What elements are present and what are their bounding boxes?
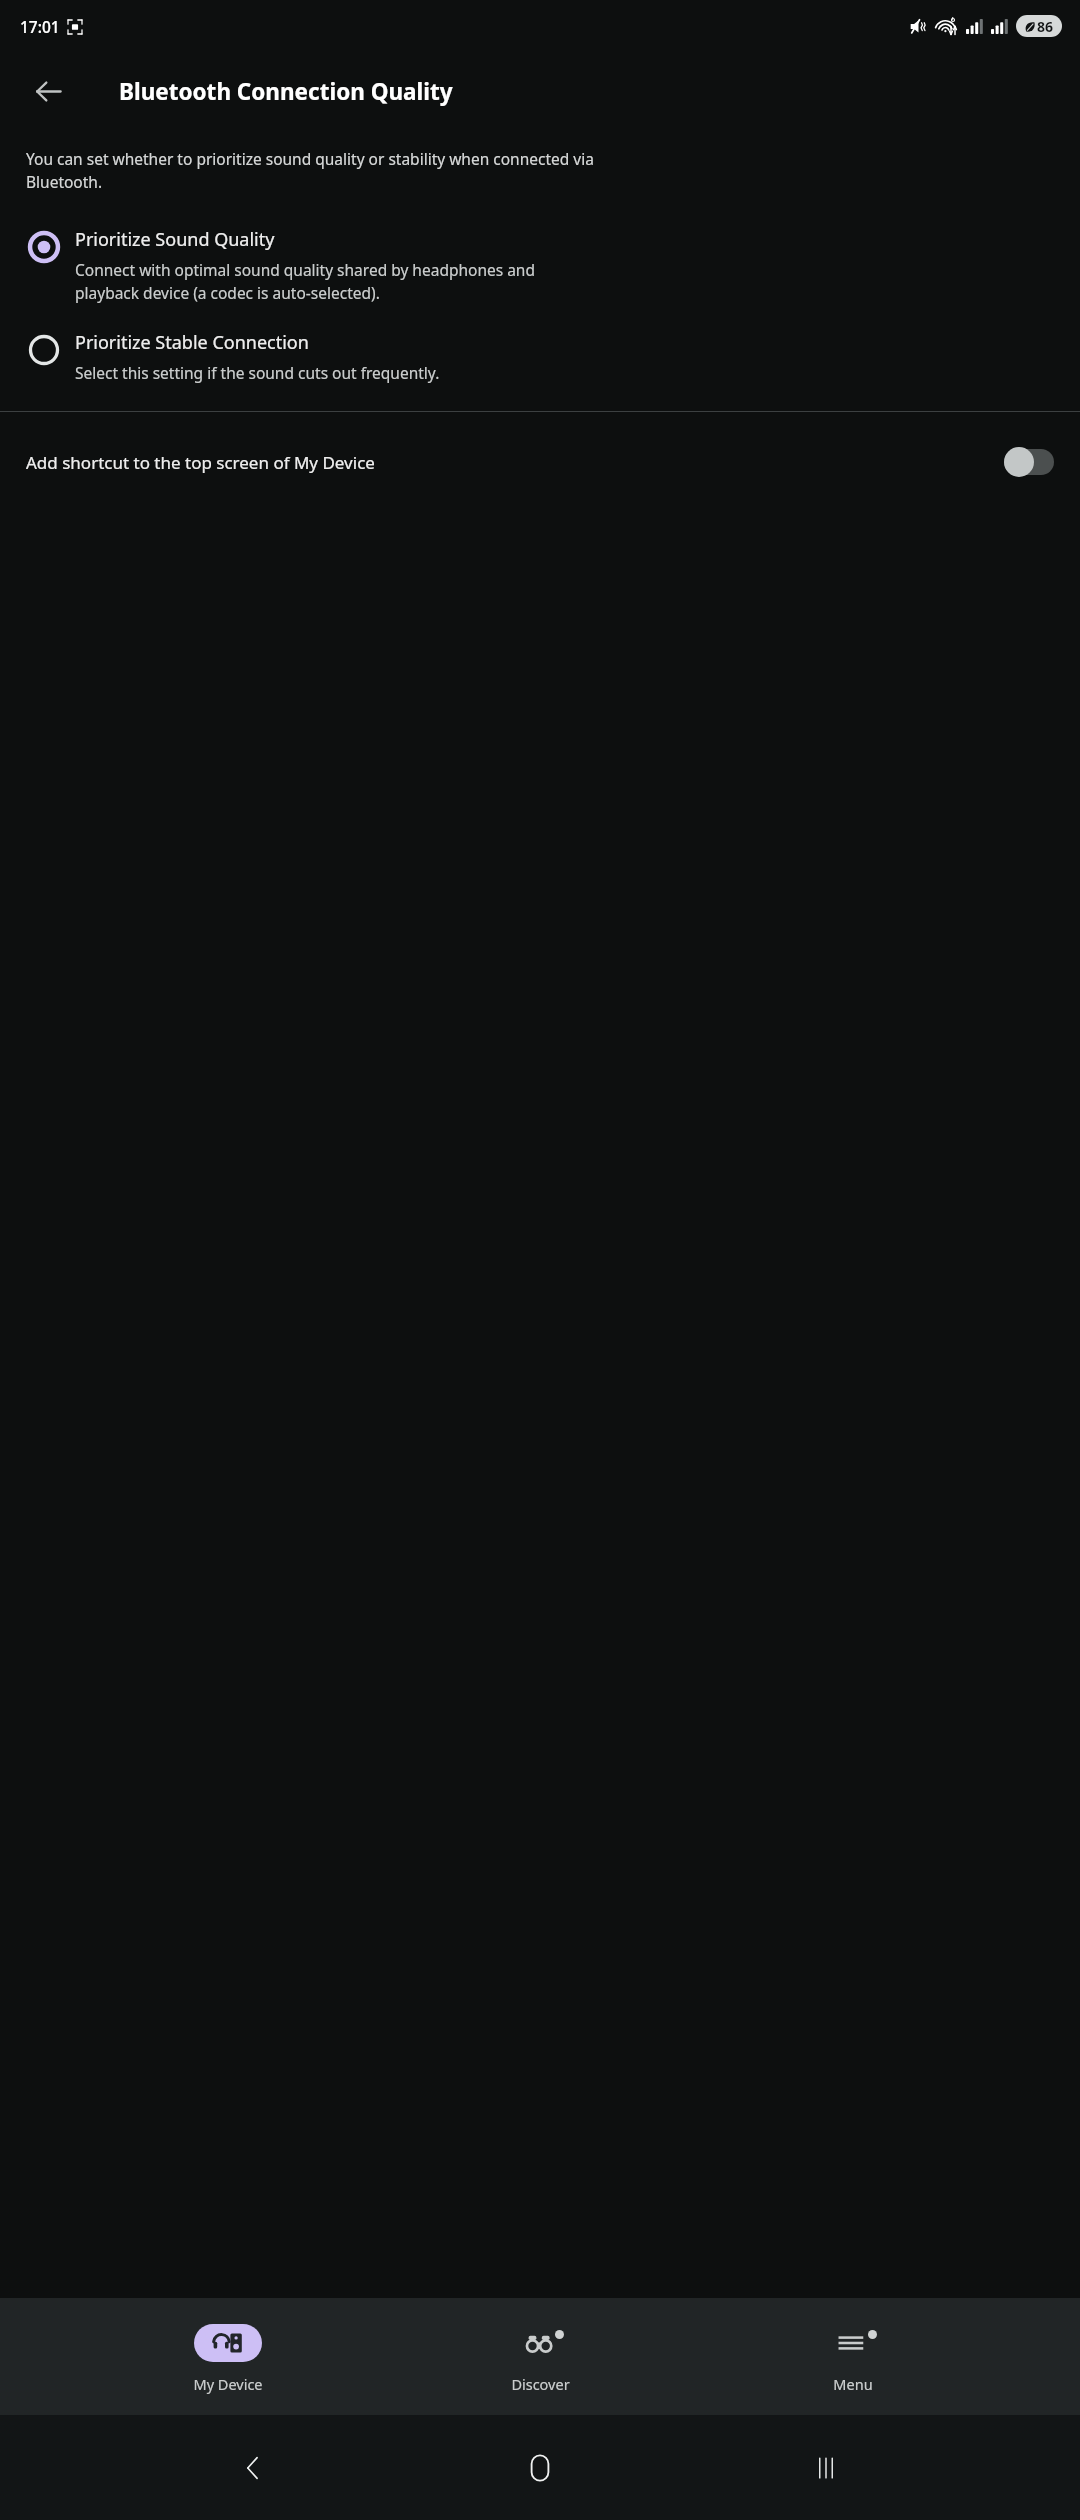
staticText: Prioritize Stable Connection: [75, 330, 309, 355]
staticText: Discover: [511, 2374, 570, 2394]
staticText: Prioritize Sound Quality: [75, 227, 275, 252]
staticText: Menu: [833, 2374, 873, 2394]
button[interactable]: Prioritize Sound Quality: [0, 221, 1080, 310]
staticText: Add shortcut to the top screen of My Dev…: [26, 451, 992, 474]
staticText: Bluetooth Connection Quality: [119, 76, 453, 107]
button[interactable]: Add shortcut to the top screen of My Dev…: [0, 412, 1080, 512]
staticText: You can set whether to prioritize sound …: [26, 148, 594, 193]
button[interactable]: Home: [508, 2436, 572, 2500]
staticText: 86: [1037, 17, 1054, 36]
button[interactable]: My Device: [143, 2320, 313, 2394]
button[interactable]: Back: [22, 65, 74, 117]
button[interactable]: Discover: [455, 2320, 625, 2394]
staticText: Connect with optimal sound quality share…: [75, 259, 535, 304]
button[interactable]: Recent apps: [794, 2436, 858, 2500]
staticText: Select this setting if the sound cuts ou…: [75, 362, 440, 383]
button[interactable]: Prioritize Stable Connection: [0, 324, 1080, 389]
button[interactable]: Back: [222, 2436, 286, 2500]
staticText: 17:01: [20, 16, 60, 37]
staticText: My Device: [193, 2374, 263, 2394]
button[interactable]: Menu: [768, 2320, 938, 2394]
